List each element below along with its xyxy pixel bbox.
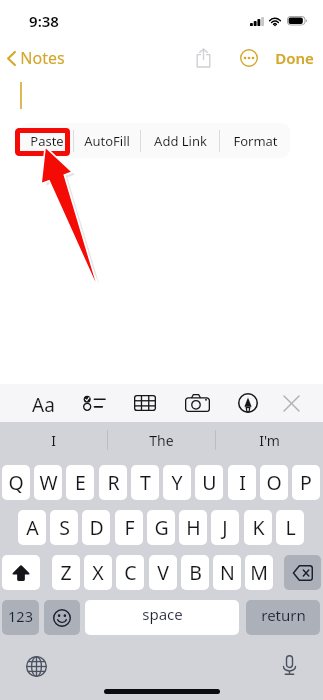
button[interactable]: Done — [270, 43, 319, 73]
button[interactable]: Shift — [2, 555, 40, 590]
staticText: Done — [275, 48, 314, 68]
button[interactable]: Z — [52, 555, 80, 590]
button[interactable]: J — [211, 510, 239, 545]
button[interactable]: K — [244, 510, 272, 545]
button[interactable]: Y — [163, 465, 191, 500]
button[interactable]: space — [85, 600, 239, 635]
button[interactable]: F — [115, 510, 143, 545]
button[interactable]: L — [276, 510, 304, 545]
button[interactable]: N — [213, 555, 241, 590]
button[interactable]: Markup — [232, 387, 264, 419]
staticText: Y — [171, 469, 183, 496]
button[interactable]: U — [195, 465, 223, 500]
button[interactable]: Format — [220, 123, 290, 158]
staticText: M — [250, 559, 268, 586]
button[interactable]: Table — [128, 389, 162, 417]
staticText: return — [261, 605, 306, 625]
button[interactable]: A — [18, 510, 46, 545]
button[interactable]: T — [131, 465, 159, 500]
staticText: G — [154, 514, 169, 541]
staticText: L — [285, 514, 296, 541]
staticText: I — [239, 469, 246, 496]
staticText: W — [39, 469, 58, 496]
staticText: Paste — [30, 132, 64, 150]
button[interactable]: Backspace — [284, 555, 321, 590]
button[interactable]: Share — [191, 43, 216, 73]
staticText: Add Link — [154, 132, 207, 150]
button[interactable]: Add Link — [141, 123, 219, 158]
staticText: S — [59, 514, 70, 541]
button[interactable]: Aa — [28, 387, 59, 423]
staticText: Notes — [20, 47, 65, 69]
staticText: K — [252, 514, 265, 541]
staticText: N — [220, 559, 235, 586]
staticText: R — [107, 469, 120, 496]
staticText: V — [157, 559, 169, 586]
button[interactable]: Q — [2, 465, 30, 500]
staticText: Format — [233, 132, 278, 150]
button[interactable]: AutoFill — [74, 123, 140, 158]
staticText: Aa — [32, 392, 55, 418]
staticText: C — [124, 559, 137, 586]
button[interactable]: I — [228, 465, 256, 500]
button[interactable]: Paste — [20, 123, 73, 158]
staticText: E — [75, 469, 86, 496]
button[interactable]: O — [260, 465, 288, 500]
button[interactable]: Emoji — [44, 600, 80, 635]
staticText: P — [300, 469, 312, 496]
staticText: O — [266, 469, 282, 496]
button[interactable]: I'm — [215, 422, 323, 460]
button[interactable]: R — [99, 465, 127, 500]
staticText: F — [124, 514, 135, 541]
button[interactable]: Close — [277, 389, 306, 418]
staticText: 123 — [8, 606, 33, 626]
staticText: H — [186, 514, 201, 541]
staticText: space — [142, 604, 183, 624]
staticText: AutoFill — [84, 132, 130, 150]
button[interactable]: W — [34, 465, 62, 500]
button[interactable]: I — [0, 422, 107, 460]
staticText: T — [140, 469, 151, 496]
button[interactable]: X — [84, 555, 112, 590]
button[interactable]: Notes — [4, 42, 68, 74]
button[interactable]: D — [82, 510, 110, 545]
staticText: B — [189, 559, 202, 586]
button[interactable]: More options — [236, 45, 262, 71]
button[interactable]: S — [50, 510, 78, 545]
button[interactable]: G — [147, 510, 175, 545]
button[interactable]: H — [179, 510, 207, 545]
staticText: X — [92, 559, 104, 586]
staticText: The — [149, 431, 174, 450]
staticText: A — [26, 514, 39, 541]
button[interactable]: Camera — [179, 388, 216, 418]
staticText: U — [202, 469, 217, 496]
button[interactable]: return — [246, 600, 320, 635]
button[interactable]: M — [245, 555, 273, 590]
button[interactable]: 123 — [2, 600, 39, 635]
button[interactable]: Checklist — [77, 389, 111, 417]
staticText: J — [222, 514, 228, 541]
staticText: I — [51, 431, 56, 450]
button[interactable]: Dictation — [281, 654, 298, 677]
button[interactable]: B — [181, 555, 209, 590]
button[interactable]: E — [66, 465, 94, 500]
staticText: 9:38 — [29, 11, 59, 31]
button[interactable]: The — [107, 422, 215, 460]
button[interactable]: Switch keyboard — [25, 655, 48, 678]
button[interactable]: C — [116, 555, 144, 590]
staticText: Q — [8, 469, 24, 496]
staticText: D — [89, 514, 104, 541]
button[interactable]: P — [292, 465, 320, 500]
staticText: Z — [60, 559, 72, 586]
button[interactable]: V — [149, 555, 177, 590]
staticText: I'm — [259, 431, 280, 450]
